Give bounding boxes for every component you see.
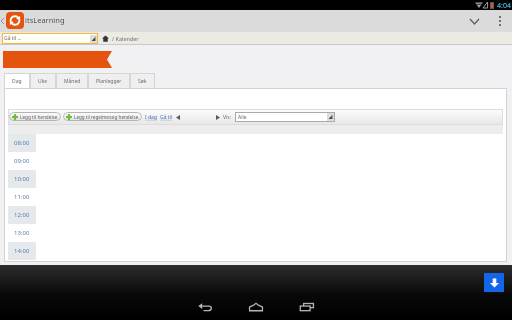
button[interactable]: Måned — [56, 73, 88, 89]
button[interactable]: Recent apps — [288, 295, 326, 319]
staticText: 10:00 — [14, 175, 30, 183]
staticText: Dag — [12, 78, 22, 85]
staticText: itsLearning — [25, 15, 65, 25]
button[interactable]: Expand — [462, 10, 486, 32]
staticText: Planlegger — [96, 78, 122, 85]
staticText: 13:00 — [14, 229, 30, 237]
staticText: 08:00 — [14, 139, 30, 147]
staticText: 4:04 — [497, 1, 511, 11]
button[interactable]: Alle — [235, 112, 335, 122]
staticText: Legg til hendelse — [20, 114, 58, 120]
button[interactable]: Back — [186, 295, 224, 319]
staticText: Søk — [138, 78, 147, 85]
button[interactable]: Home — [237, 295, 275, 319]
button[interactable]: Legg til hendelse — [12, 112, 58, 121]
staticText: Vis: — [223, 114, 232, 121]
staticText: 11:00 — [14, 193, 30, 201]
button[interactable]: Gå til ... — [2, 33, 98, 44]
staticText: Måned — [64, 78, 81, 85]
staticText: 14:00 — [14, 247, 30, 255]
staticText: Alle — [238, 114, 247, 121]
staticText: Uke — [38, 78, 48, 85]
button[interactable]: Søk — [130, 73, 155, 89]
button[interactable]: Download — [484, 273, 504, 292]
button[interactable]: Dag — [4, 73, 30, 89]
button[interactable]: Gå til — [160, 114, 173, 121]
button[interactable]: I dag — [145, 114, 157, 121]
button[interactable]: Planlegger — [88, 73, 130, 89]
button[interactable]: Uke — [30, 73, 56, 89]
button[interactable]: More options — [491, 10, 508, 32]
staticText: 09:00 — [14, 157, 30, 165]
staticText: / Kalender — [112, 35, 139, 42]
staticText: Legg til regelmessig hendelse — [74, 114, 139, 120]
button[interactable]: itsLearning home — [6, 12, 24, 29]
staticText: 12:00 — [14, 211, 30, 219]
staticText: Gå til ... — [4, 35, 22, 42]
button[interactable]: Legg til regelmessig hendelse — [66, 112, 139, 121]
